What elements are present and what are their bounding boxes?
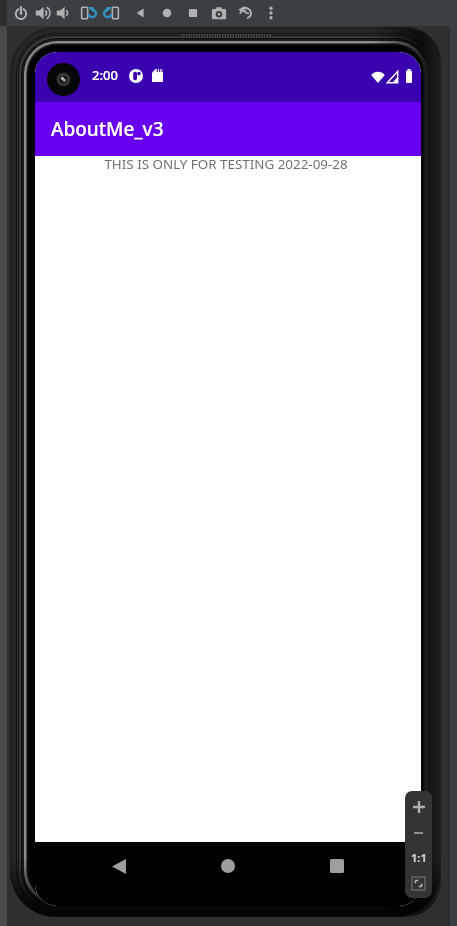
button[interactable]: Actual size: [405, 846, 432, 869]
button[interactable]: Back: [94, 842, 144, 890]
button[interactable]: Home: [156, 2, 178, 24]
button[interactable]: More options: [260, 2, 282, 24]
button[interactable]: Rotate left: [77, 2, 99, 24]
staticText: THIS IS ONLY FOR TESTING 2022-09-28: [35, 155, 419, 173]
button[interactable]: Recent apps: [312, 842, 362, 890]
button[interactable]: Take screenshot: [208, 2, 230, 24]
button[interactable]: Zoom out: [405, 821, 432, 844]
button[interactable]: Volume down: [54, 2, 76, 24]
button[interactable]: Zoom in: [405, 795, 432, 818]
button[interactable]: Overview: [182, 2, 204, 24]
button[interactable]: Home: [203, 842, 253, 890]
staticText: 1:1: [411, 850, 427, 865]
button[interactable]: Fit to screen: [405, 872, 432, 895]
staticText: AboutMe_v3: [51, 116, 164, 142]
button[interactable]: Record screen: [234, 2, 256, 24]
button[interactable]: Power: [10, 2, 32, 24]
button[interactable]: Back: [130, 2, 152, 24]
button[interactable]: Volume up: [33, 2, 55, 24]
staticText: 2:00: [92, 66, 118, 84]
button[interactable]: Rotate right: [101, 2, 123, 24]
